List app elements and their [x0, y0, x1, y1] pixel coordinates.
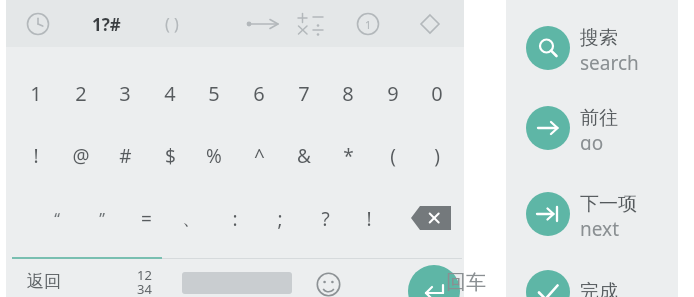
- button[interactable]: 2: [60, 72, 102, 114]
- staticText: “: [54, 208, 60, 230]
- staticText: !: [33, 143, 39, 169]
- staticText: 搜索: [580, 26, 618, 50]
- staticText: ?: [321, 206, 330, 232]
- button[interactable]: 返回: [14, 266, 74, 297]
- button[interactable]: go: [526, 106, 570, 150]
- button[interactable]: 3: [104, 72, 146, 114]
- button[interactable]: 完成: [580, 270, 678, 297]
- button[interactable]: 1?#: [80, 9, 132, 39]
- button[interactable]: 搜索: [580, 26, 678, 70]
- button[interactable]: *: [327, 135, 369, 177]
- button[interactable]: 6: [238, 72, 280, 114]
- staticText: 5: [208, 80, 220, 107]
- button[interactable]: “: [36, 198, 78, 240]
- staticText: 6: [253, 80, 265, 107]
- staticText: next: [580, 216, 619, 236]
- button[interactable]: =: [125, 198, 167, 240]
- staticText: ^: [254, 143, 265, 169]
- staticText: (: [390, 143, 396, 169]
- button[interactable]: !: [15, 135, 57, 177]
- staticText: #: [119, 143, 132, 169]
- button[interactable]: (: [372, 135, 414, 177]
- button[interactable]: :: [214, 198, 256, 240]
- staticText: &: [297, 143, 311, 169]
- staticText: 1: [30, 80, 42, 107]
- staticText: search: [580, 50, 639, 70]
- staticText: 9: [387, 80, 399, 107]
- staticText: go: [580, 130, 604, 150]
- button[interactable]: ;: [259, 198, 301, 240]
- staticText: 7: [298, 80, 310, 107]
- button[interactable]: 前往: [580, 106, 678, 150]
- button[interactable]: Emoji: [314, 270, 342, 297]
- button[interactable]: 12 34: [122, 266, 166, 297]
- button[interactable]: Recent: [24, 10, 52, 38]
- button[interactable]: !: [348, 198, 390, 240]
- staticText: 1: [365, 17, 372, 32]
- staticText: ( ): [165, 13, 179, 35]
- button[interactable]: 9: [372, 72, 414, 114]
- button[interactable]: 下一项: [580, 192, 678, 236]
- staticText: 完成: [580, 280, 618, 297]
- button[interactable]: done: [526, 270, 570, 297]
- staticText: 4: [164, 80, 176, 107]
- staticText: 2: [75, 80, 87, 107]
- button[interactable]: ?: [304, 198, 346, 240]
- button[interactable]: ( ): [152, 9, 192, 39]
- staticText: 1?#: [92, 13, 121, 36]
- button[interactable]: Enter: [408, 265, 460, 297]
- staticText: ): [434, 143, 440, 169]
- button[interactable]: 0: [416, 72, 458, 114]
- staticText: 8: [342, 80, 354, 107]
- staticText: 12 34: [137, 266, 152, 297]
- button[interactable]: @: [60, 135, 102, 177]
- button[interactable]: 4: [149, 72, 191, 114]
- button[interactable]: 7: [283, 72, 325, 114]
- staticText: $: [165, 143, 176, 169]
- staticText: !: [366, 206, 372, 232]
- button[interactable]: 1: [15, 72, 57, 114]
- button[interactable]: Number one: [354, 10, 382, 38]
- button[interactable]: #: [104, 135, 146, 177]
- button[interactable]: 、: [170, 198, 212, 240]
- button[interactable]: ”: [81, 198, 123, 240]
- button[interactable]: Arrows: [243, 10, 283, 38]
- staticText: ”: [99, 208, 105, 230]
- button[interactable]: ): [416, 135, 458, 177]
- staticText: @: [72, 143, 90, 169]
- staticText: 前往: [580, 106, 618, 130]
- button[interactable]: Delete: [411, 206, 451, 230]
- button[interactable]: Shapes: [416, 10, 444, 38]
- staticText: =: [141, 206, 152, 232]
- staticText: :: [232, 206, 238, 232]
- staticText: 返回: [27, 271, 61, 292]
- button[interactable]: ^: [238, 135, 280, 177]
- staticText: 、: [182, 207, 201, 231]
- button[interactable]: 8: [327, 72, 369, 114]
- staticText: 下一项: [580, 192, 637, 216]
- staticText: 回车: [446, 270, 486, 295]
- button[interactable]: [292, 8, 330, 40]
- button[interactable]: &: [283, 135, 325, 177]
- button[interactable]: $: [149, 135, 191, 177]
- button[interactable]: next: [526, 192, 570, 236]
- button[interactable]: search: [526, 26, 570, 70]
- staticText: 0: [431, 80, 443, 107]
- button[interactable]: 5: [193, 72, 235, 114]
- staticText: 3: [119, 80, 131, 107]
- staticText: %: [206, 143, 222, 169]
- staticText: ;: [277, 206, 283, 232]
- button[interactable]: %: [193, 135, 235, 177]
- staticText: *: [343, 143, 354, 169]
